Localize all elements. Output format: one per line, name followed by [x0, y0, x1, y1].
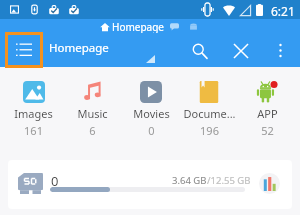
staticText: Movies — [133, 106, 170, 121]
staticText: 6 — [89, 123, 96, 138]
button[interactable]: Music — [63, 76, 122, 138]
button[interactable]: Storage analysis — [259, 173, 280, 194]
staticText: Docume... — [183, 106, 236, 121]
button[interactable]: Docume... — [180, 76, 238, 138]
button[interactable]: 0 — [8, 160, 292, 209]
staticText: Images — [14, 106, 53, 121]
staticText: Homepage — [49, 40, 109, 56]
button[interactable]: Search — [185, 36, 214, 65]
staticText: APP — [257, 106, 278, 121]
button[interactable]: Menu — [5, 32, 43, 68]
staticText: 0 — [148, 123, 155, 138]
staticText: 196 — [200, 123, 219, 138]
staticText: Music — [77, 106, 108, 121]
staticText: 52 — [261, 123, 274, 138]
staticText: 6:21 — [271, 3, 295, 19]
button[interactable]: APP — [238, 76, 296, 138]
button[interactable]: Movies — [122, 76, 180, 138]
button[interactable]: Close — [226, 36, 255, 65]
staticText: /12.55 GB — [207, 174, 251, 187]
staticText: 0 — [51, 172, 59, 190]
staticText: Homepage — [112, 20, 164, 33]
staticText: 3.64 GB — [172, 174, 207, 187]
button[interactable]: More options — [266, 36, 295, 65]
button[interactable]: Images — [4, 76, 63, 138]
staticText: 161 — [24, 123, 43, 138]
